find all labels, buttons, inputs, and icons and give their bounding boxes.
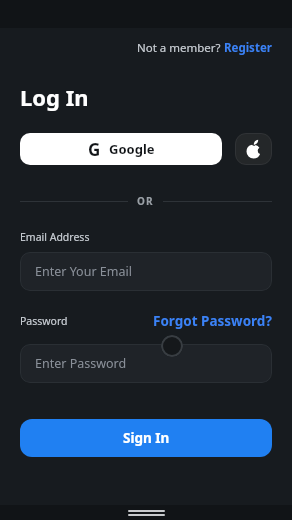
staticText: Email Address	[20, 230, 90, 244]
staticText: G	[88, 138, 101, 161]
button[interactable]: Register	[224, 40, 272, 56]
staticText: Forgot Password?	[153, 312, 272, 330]
staticText: Enter Your Email	[35, 263, 132, 280]
staticText: Sign In	[123, 429, 170, 447]
staticText: Password	[20, 314, 68, 328]
staticText: Log In	[20, 82, 89, 112]
staticText: Not a member?	[137, 40, 224, 56]
staticText: Enter Password	[35, 355, 127, 372]
staticText: Google	[109, 140, 155, 158]
button[interactable]: G	[20, 133, 222, 165]
button[interactable]: Enter Password	[20, 344, 272, 383]
button[interactable]	[235, 133, 272, 165]
staticText: OR	[137, 194, 154, 208]
button[interactable]: Forgot Password?	[153, 312, 272, 330]
button[interactable]: Sign In	[20, 419, 272, 457]
button[interactable]: Enter Your Email	[20, 252, 272, 291]
staticText: Register	[224, 40, 272, 56]
